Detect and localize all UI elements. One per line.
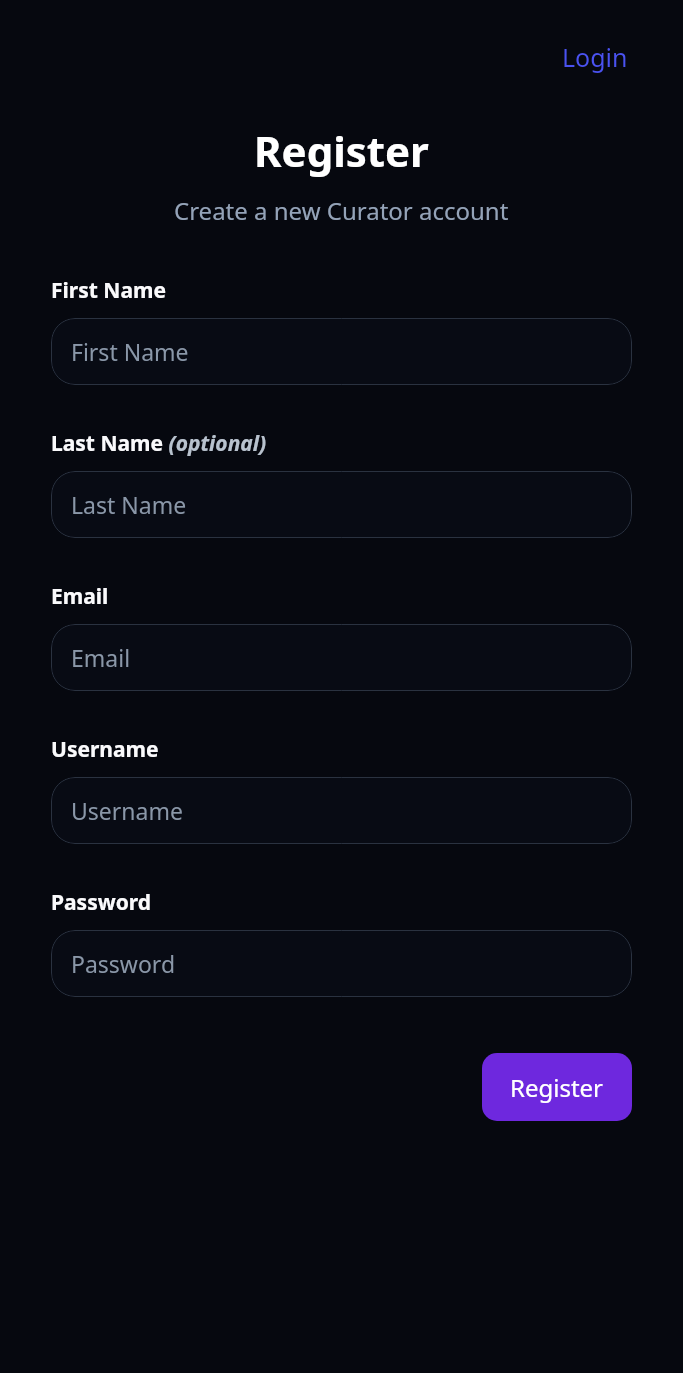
button[interactable]: Login	[558, 38, 632, 76]
staticText: Last Name (optional)	[51, 429, 267, 458]
staticText: Email	[71, 642, 131, 673]
staticText: Email	[51, 582, 109, 611]
staticText: Create a new Curator account	[174, 194, 509, 227]
button[interactable]: Email	[51, 624, 632, 691]
staticText: Username	[71, 795, 183, 826]
staticText: Username	[51, 735, 159, 764]
staticText: Password	[71, 948, 176, 979]
button[interactable]: Register	[482, 1053, 632, 1121]
staticText: Last Name	[71, 489, 187, 520]
button[interactable]: First Name	[51, 318, 632, 385]
button[interactable]: Username	[51, 777, 632, 844]
staticText: Password	[51, 888, 152, 917]
button[interactable]: Password	[51, 930, 632, 997]
staticText: Login	[562, 40, 628, 74]
staticText: Register	[254, 122, 429, 179]
staticText: Register	[510, 1071, 604, 1104]
staticText: First Name	[51, 276, 166, 305]
staticText: First Name	[71, 336, 189, 367]
button[interactable]: Last Name	[51, 471, 632, 538]
